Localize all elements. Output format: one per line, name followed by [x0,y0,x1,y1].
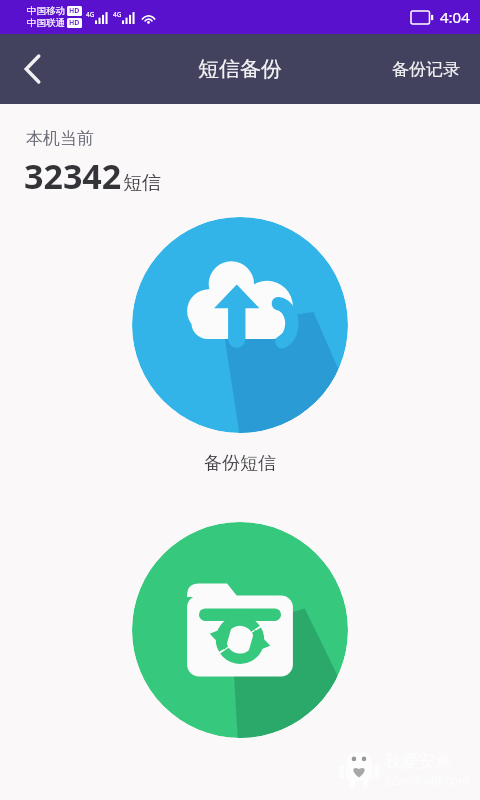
staticText: 中国移动 [27,5,65,17]
staticText: HD [69,18,80,28]
staticText: HD [69,6,80,16]
staticText: 4G [113,10,122,19]
staticText: 32342 [24,153,122,199]
button[interactable]: 恢复短信 [132,522,348,738]
staticText: 短信 [123,171,161,195]
staticText: 备份记录 [392,59,460,80]
staticText: 4:04 [440,7,470,27]
button[interactable]: 返回 [0,34,64,104]
button[interactable]: 备份短信 [132,217,348,433]
staticText: 本机当前 [26,128,94,149]
button[interactable]: 备份记录 [372,34,480,104]
staticText: 备份短信 [204,452,276,475]
staticText: 短信备份 [198,56,282,82]
staticText: 4G [86,10,95,19]
staticText: 中国联通 [27,17,65,29]
